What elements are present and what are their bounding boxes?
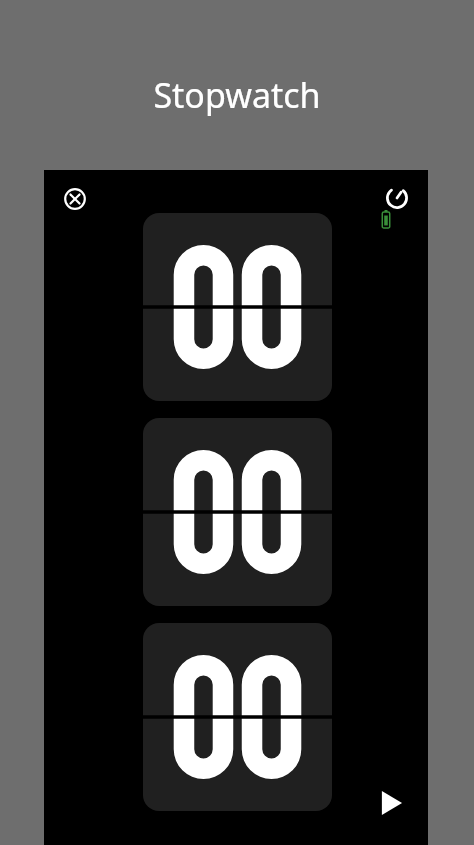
button[interactable]: Timer xyxy=(378,178,416,216)
button[interactable] xyxy=(143,623,332,811)
button[interactable]: Start xyxy=(366,778,416,828)
button[interactable] xyxy=(143,213,332,401)
button[interactable]: Close xyxy=(56,180,94,218)
button[interactable] xyxy=(143,418,332,606)
staticText: Stopwatch xyxy=(153,72,321,118)
